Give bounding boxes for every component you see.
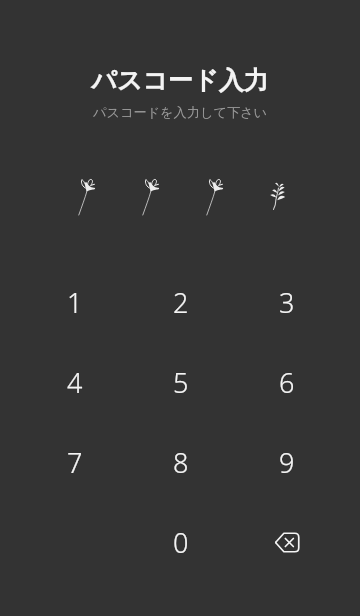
staticText: 4 — [67, 364, 83, 401]
staticText: 9 — [279, 444, 295, 481]
button[interactable]: 4 — [22, 342, 128, 422]
staticText: 0 — [173, 524, 189, 561]
button[interactable]: 8 — [128, 422, 234, 502]
button[interactable]: 7 — [22, 422, 128, 502]
staticText: パスコードを入力して下さい — [0, 104, 360, 121]
button[interactable]: 2 — [128, 262, 234, 342]
button[interactable]: 1 — [22, 262, 128, 342]
button[interactable]: Delete last digit — [234, 502, 340, 582]
staticText: 7 — [67, 444, 83, 481]
button[interactable]: 5 — [128, 342, 234, 422]
staticText: 5 — [173, 364, 189, 401]
staticText: 3 — [279, 284, 295, 321]
button[interactable]: 0 — [128, 502, 234, 582]
staticText: 8 — [173, 444, 189, 481]
other: Passcode progress — [0, 0, 360, 616]
button[interactable]: 3 — [234, 262, 340, 342]
staticText: パスコード入力 — [0, 65, 360, 96]
staticText: 2 — [173, 284, 189, 321]
button[interactable]: 6 — [234, 342, 340, 422]
staticText: 6 — [279, 364, 295, 401]
staticText: 1 — [67, 284, 83, 321]
button[interactable]: 9 — [234, 422, 340, 502]
